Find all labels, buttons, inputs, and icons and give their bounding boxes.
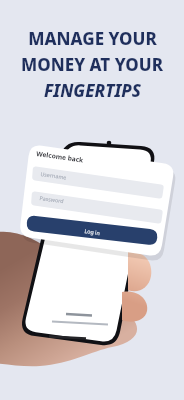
staticText: MONEY AT YOUR	[21, 53, 163, 76]
staticText: MANAGE YOUR	[28, 27, 157, 50]
staticText: FINGERTIPS	[44, 79, 141, 102]
staticText: Log in	[84, 227, 101, 236]
staticText: Username	[40, 170, 68, 181]
staticText: Welcome back	[36, 149, 84, 165]
staticText: Password	[39, 194, 65, 204]
